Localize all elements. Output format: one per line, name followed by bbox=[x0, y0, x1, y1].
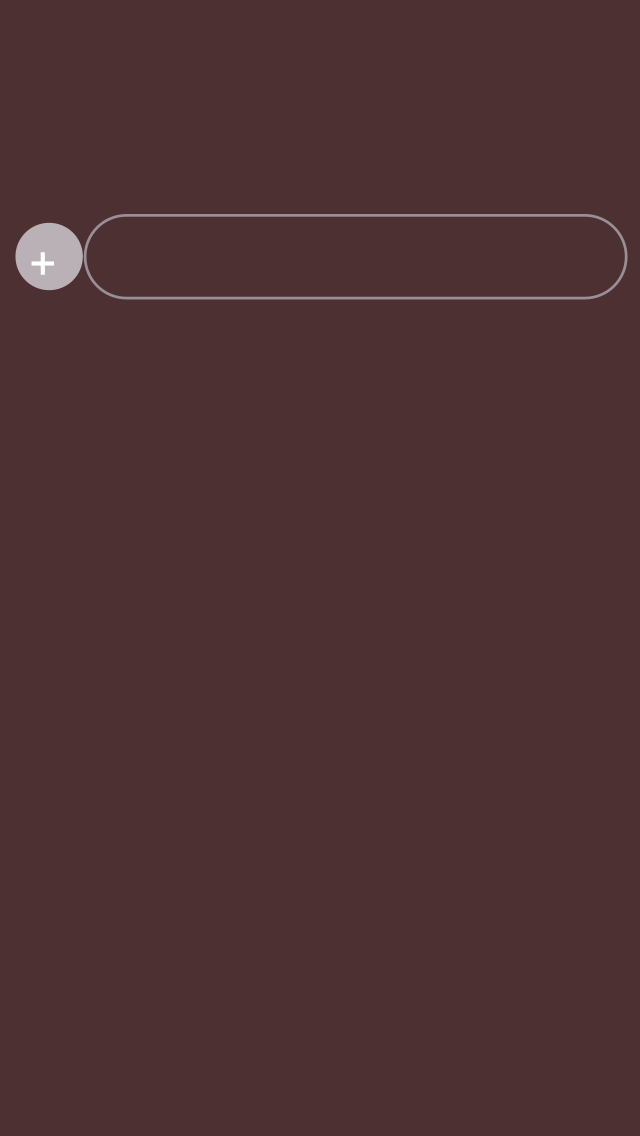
button[interactable]: Message field bbox=[85, 215, 626, 298]
button[interactable]: Add bbox=[15, 223, 83, 290]
